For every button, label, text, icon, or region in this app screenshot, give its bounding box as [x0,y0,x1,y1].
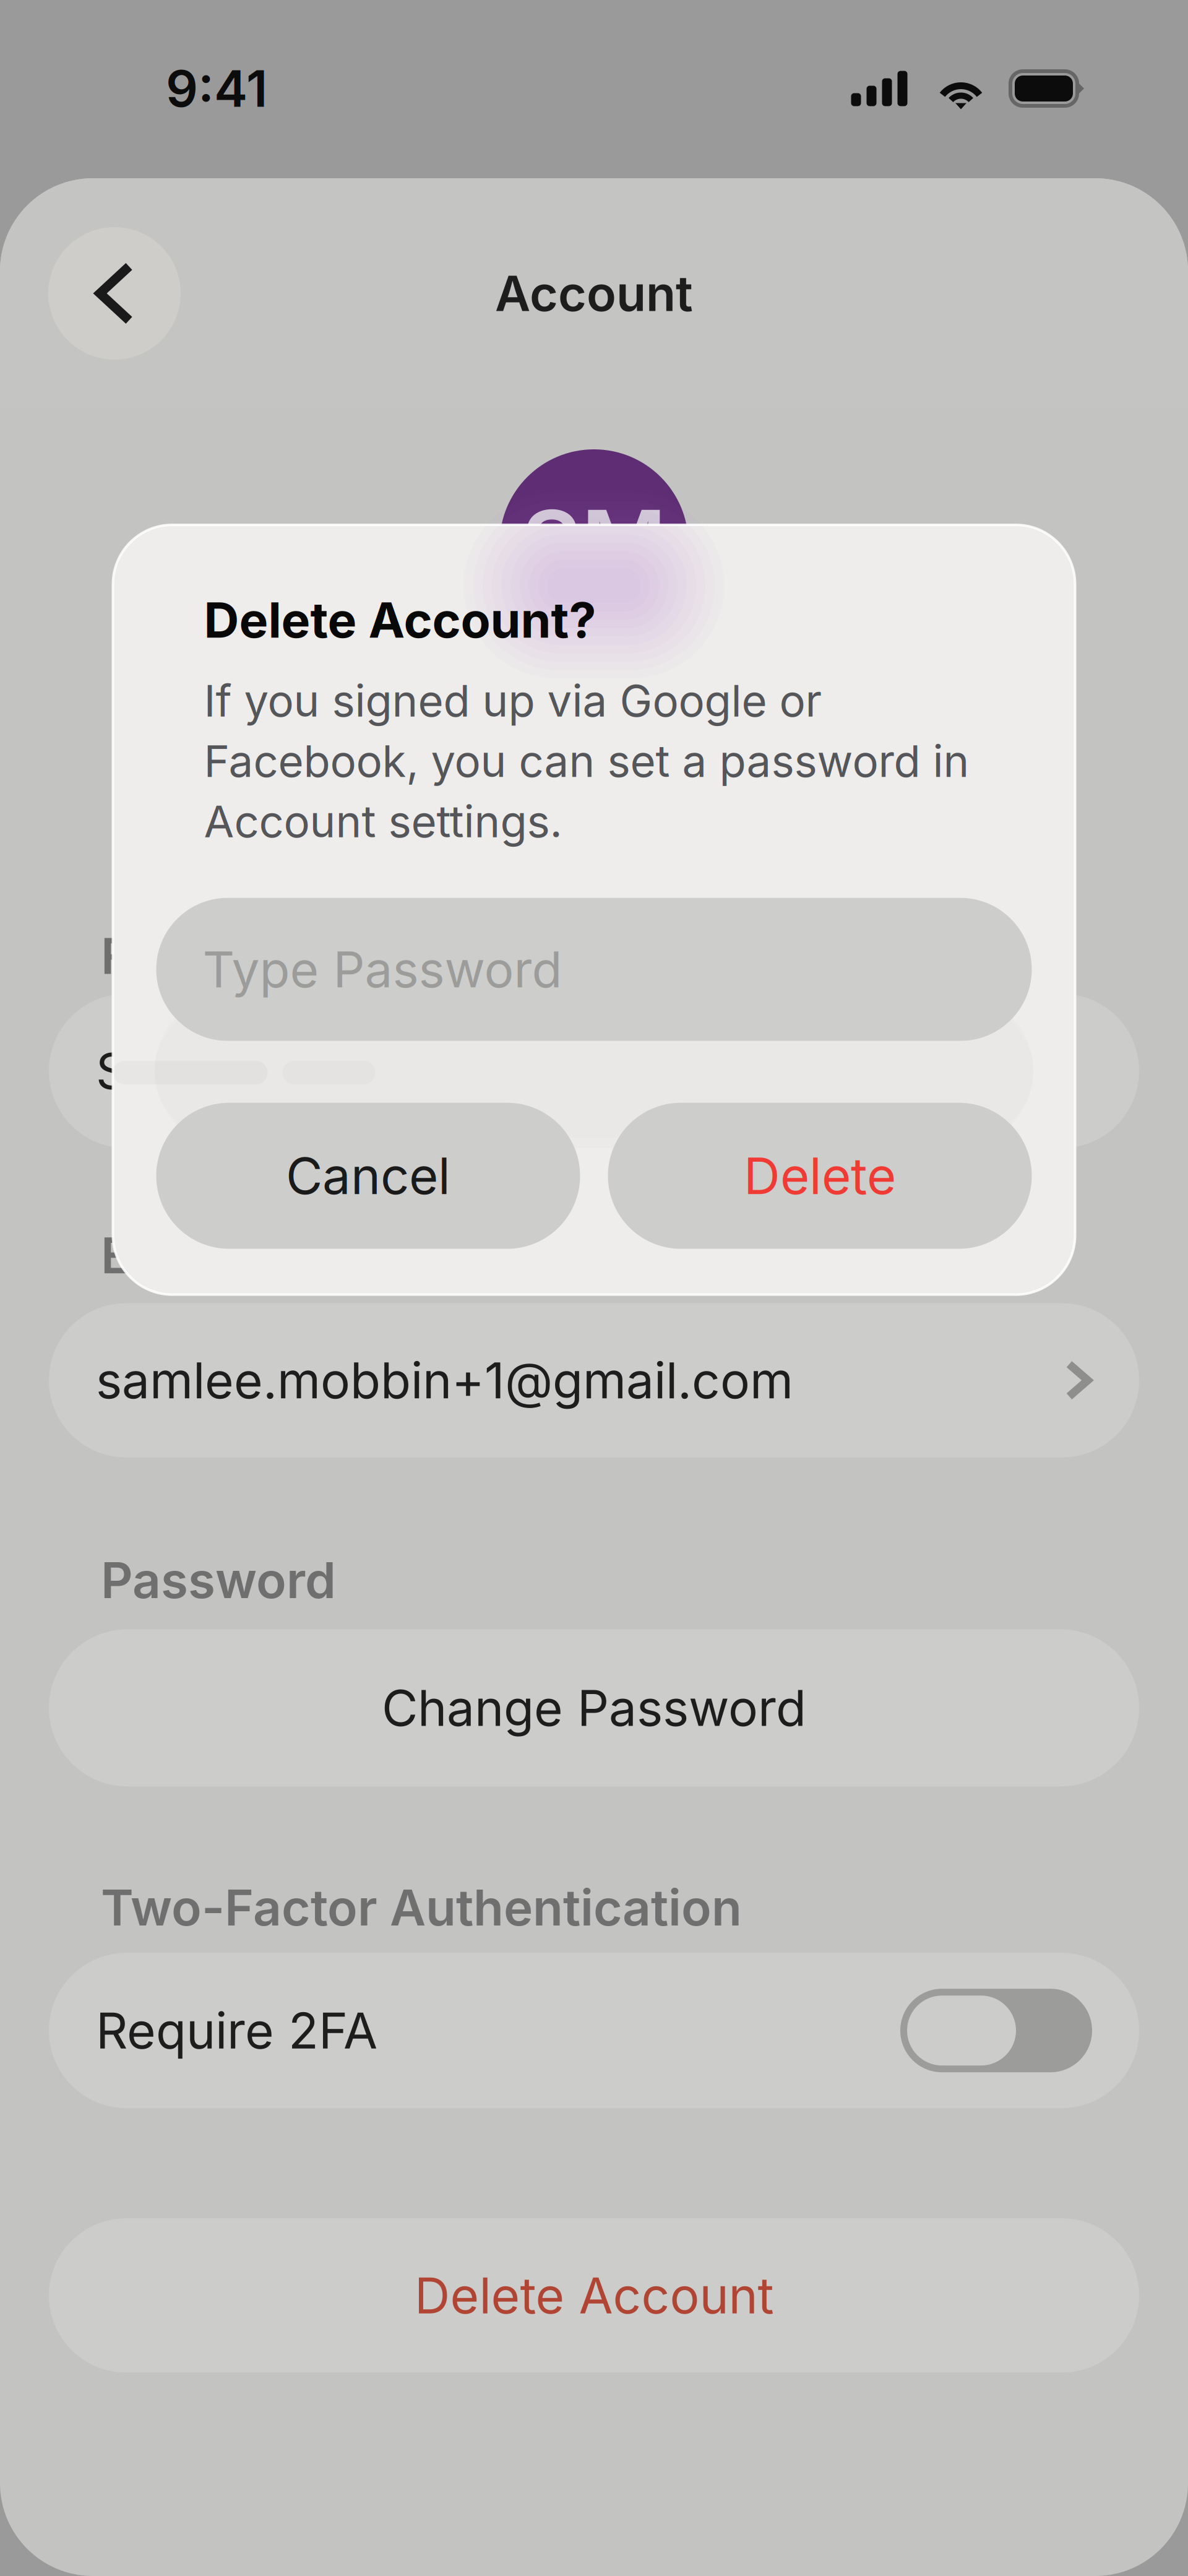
staticText: Delete Account? [204,590,596,649]
staticText: Account [495,264,693,323]
button[interactable]: Change Password [0,1629,1188,1786]
staticText: Email [101,1225,230,1285]
button[interactable]: Cancel [156,1103,580,1249]
staticText: Password [101,1550,336,1610]
staticText: Two-Factor Authentication [101,1877,742,1937]
button[interactable]: Samantha Miller [0,994,1188,1148]
staticText: Cancel [286,1145,450,1206]
staticText: SM [521,488,667,600]
staticText: First Name [101,926,359,986]
staticText: Samantha Miller [96,1041,470,1101]
button[interactable]: samlee.mobbin+1@gmail.com [0,1303,1188,1457]
staticText: Delete Account [414,2265,774,2325]
staticText: Require 2FA [96,2001,377,2060]
button[interactable]: Require 2FA [0,1953,1188,2108]
button[interactable]: Delete Account [0,2218,1188,2372]
staticText: Type Password [203,939,562,999]
staticText: If you signed up via Google or [204,674,822,727]
staticText: Delete [744,1145,896,1206]
staticText: Change Password [382,1678,806,1738]
button[interactable]: Back [48,227,181,360]
staticText: samlee.mobbin+1@gmail.com [96,1350,793,1410]
staticText: 9:41 [166,58,267,119]
button[interactable]: Delete [608,1103,1032,1249]
staticText: Account settings. [204,795,562,848]
staticText: Facebook, you can set a password in [204,734,969,787]
